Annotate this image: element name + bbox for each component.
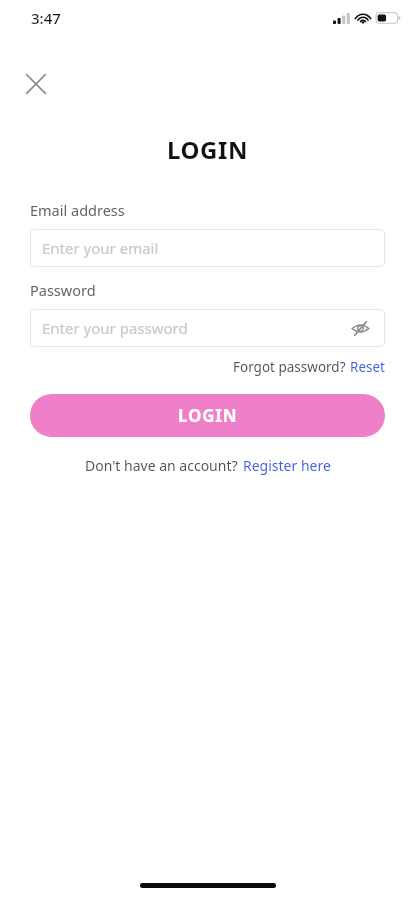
staticText: 3:47 <box>31 8 61 28</box>
staticText: Reset <box>350 358 385 376</box>
staticText: Email address <box>30 200 125 220</box>
button[interactable]: Register here <box>243 456 331 475</box>
staticText: LOGIN <box>167 133 249 166</box>
button[interactable]: Enter your password <box>30 309 385 347</box>
staticText: Don't have an account? <box>85 456 238 475</box>
button[interactable]: Close <box>14 62 58 106</box>
button[interactable]: Reset <box>350 358 385 376</box>
staticText: Enter your email <box>42 238 159 258</box>
staticText: Enter your password <box>42 318 188 338</box>
staticText: Password <box>30 280 96 300</box>
staticText: Forgot password? <box>233 358 346 376</box>
button[interactable]: Show password <box>347 315 373 341</box>
button[interactable]: LOGIN <box>30 394 385 437</box>
button[interactable]: Enter your email <box>30 229 385 267</box>
staticText: Register here <box>243 456 331 475</box>
staticText: LOGIN <box>178 404 238 427</box>
